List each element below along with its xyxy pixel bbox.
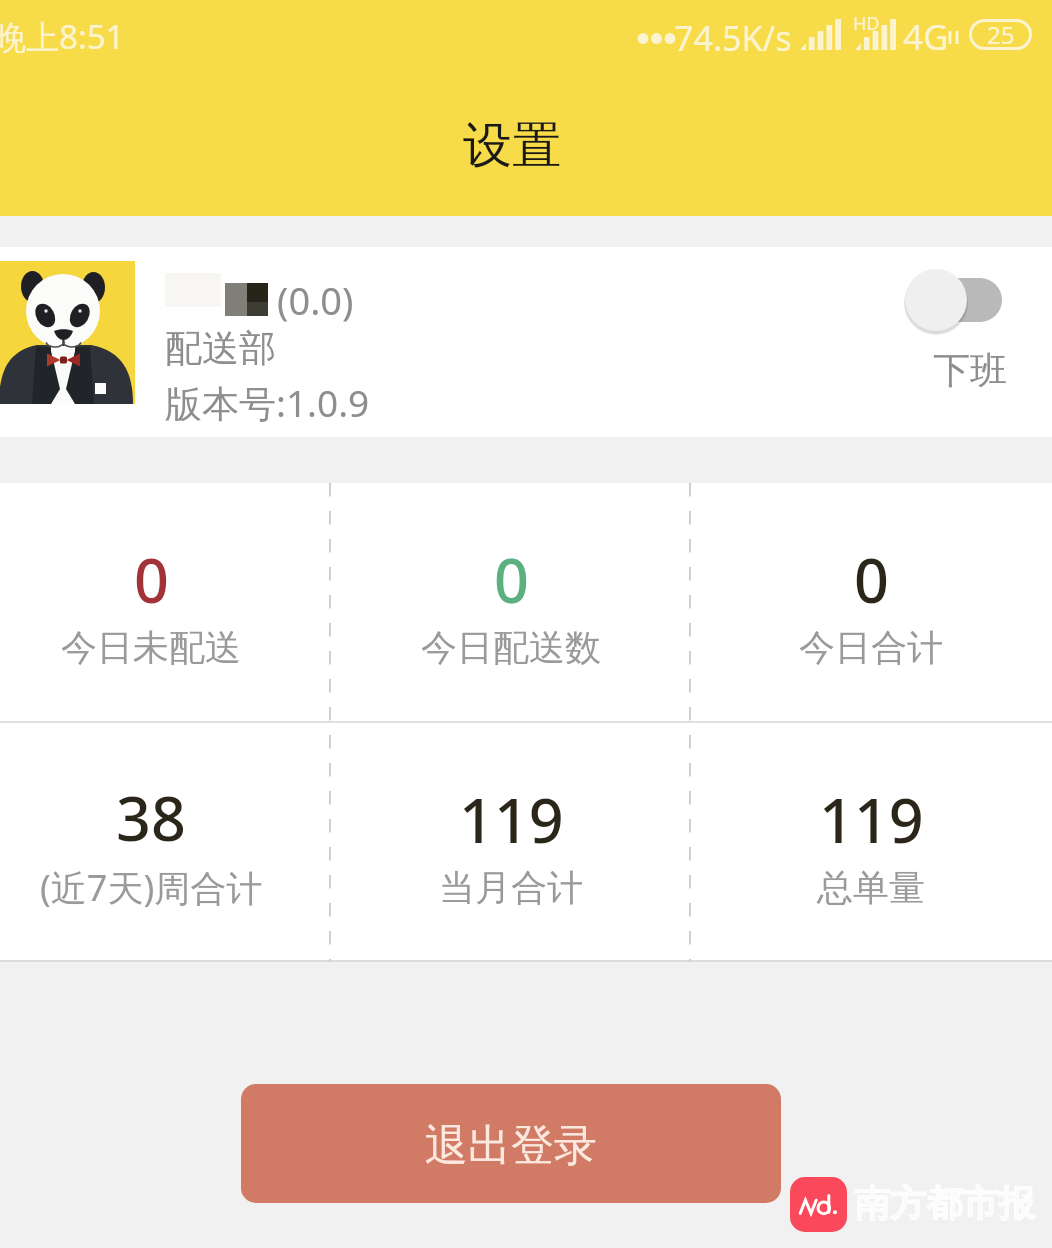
staticText: 当月合计 — [439, 865, 583, 910]
button[interactable]: 38 — [0, 723, 331, 962]
button[interactable]: 0 — [691, 483, 1051, 722]
staticText: 配送部 — [165, 325, 276, 372]
staticText: 今日配送数 — [421, 625, 601, 670]
button[interactable]: 退出登录 — [241, 1084, 781, 1203]
staticText: 4G — [903, 13, 949, 61]
staticText: 119 — [819, 778, 924, 861]
staticText: 下班 — [933, 347, 1007, 394]
staticText: 0 — [134, 538, 169, 621]
staticText: 南方都市报 — [855, 1180, 1035, 1225]
staticText: 0 — [494, 538, 529, 621]
button[interactable]: 119 — [691, 723, 1051, 962]
staticText: 74.5K/s — [674, 15, 792, 61]
staticText: 38 — [116, 776, 186, 859]
button[interactable]: 119 — [331, 723, 691, 962]
other: Profile avatar — [0, 261, 135, 404]
button[interactable]: Profile avatar — [0, 247, 1052, 437]
staticText: 晚上8:51 — [0, 14, 125, 59]
staticText: 119 — [459, 778, 564, 861]
staticText: 设置 — [463, 115, 561, 177]
staticText: 退出登录 — [425, 1119, 597, 1173]
button[interactable]: 0 — [331, 483, 691, 722]
staticText: 版本号:1.0.9 — [165, 377, 370, 428]
staticText: 今日合计 — [799, 625, 943, 670]
staticText: (0.0) — [277, 274, 354, 326]
staticText: 总单量 — [817, 865, 925, 910]
staticText: 25 — [987, 18, 1015, 49]
button[interactable]: Toggle on duty — [903, 269, 1003, 333]
staticText: HD — [853, 11, 880, 36]
staticText: 0 — [854, 538, 889, 621]
staticText: (近7天)周合计 — [40, 863, 263, 912]
staticText: 今日未配送 — [61, 625, 241, 670]
button[interactable]: 0 — [0, 483, 331, 722]
